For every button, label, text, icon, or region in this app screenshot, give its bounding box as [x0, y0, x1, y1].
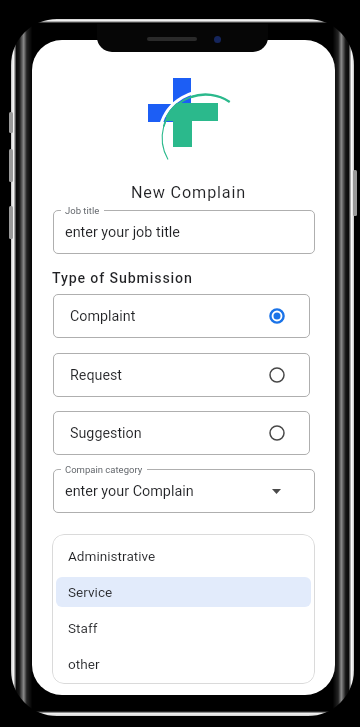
button[interactable]: Staff	[56, 613, 311, 643]
staticText: Service	[68, 584, 113, 600]
staticText: Request	[70, 367, 123, 384]
staticText: Compain category	[65, 464, 143, 475]
staticText: other	[68, 656, 100, 672]
button[interactable]: Administrative	[56, 541, 311, 571]
button[interactable]: Suggestion	[53, 411, 310, 455]
button[interactable]: other	[56, 649, 311, 679]
button[interactable]	[53, 469, 315, 513]
button[interactable]	[53, 210, 315, 254]
staticText: Staff	[68, 620, 98, 636]
staticText: New Complain	[37, 183, 335, 202]
button[interactable]: Complaint	[53, 294, 310, 338]
staticText: Administrative	[68, 548, 156, 564]
staticText: enter your job title	[65, 224, 180, 241]
staticText: Type of Submission	[52, 270, 193, 287]
staticText: Suggestion	[70, 425, 142, 442]
staticText: enter your Complain	[65, 483, 194, 500]
button[interactable]: Service	[56, 577, 311, 607]
button[interactable]: Request	[53, 353, 310, 397]
staticText: Complaint	[70, 308, 136, 325]
staticText: Job title	[65, 205, 100, 216]
